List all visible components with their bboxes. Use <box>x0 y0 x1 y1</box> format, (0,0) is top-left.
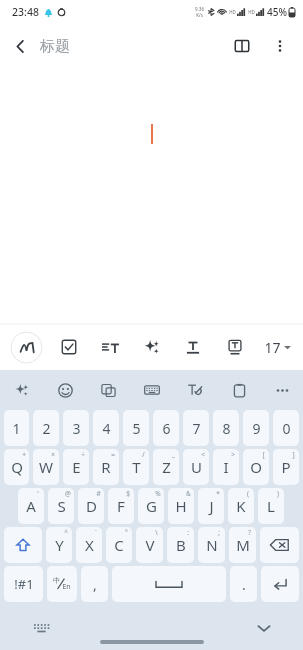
button[interactable]: 4 <box>93 410 119 446</box>
button[interactable]: AI <box>6 375 36 405</box>
button[interactable]: 8 <box>213 410 239 446</box>
button[interactable]: O <box>243 449 269 485</box>
button[interactable]: Emoji <box>50 375 80 405</box>
button[interactable]: Back <box>0 26 40 66</box>
button[interactable]: B <box>167 527 194 563</box>
staticText: S <box>57 496 66 516</box>
staticText: J <box>209 496 214 516</box>
button[interactable]: E <box>63 449 89 485</box>
button[interactable]: Hide keyboard <box>251 615 277 641</box>
button[interactable]: Z <box>153 449 179 485</box>
staticText: % <box>155 489 161 498</box>
button[interactable]: W <box>33 449 59 485</box>
button[interactable]: AI assist <box>136 332 166 362</box>
staticText: $ <box>126 489 130 498</box>
button[interactable]: 7 <box>183 410 209 446</box>
button[interactable]: S <box>48 488 74 524</box>
staticText: ` <box>95 528 97 537</box>
staticText: _ <box>172 450 175 459</box>
button[interactable]: R <box>93 449 119 485</box>
button[interactable]: 9 <box>243 410 269 446</box>
staticText: D <box>86 496 97 516</box>
button[interactable]: 3 <box>63 410 89 446</box>
button[interactable]: A <box>18 488 44 524</box>
button[interactable]: 2 <box>33 410 59 446</box>
button[interactable]: I <box>213 449 239 485</box>
button[interactable]: Text format <box>178 332 208 362</box>
button[interactable]: More <box>267 375 297 405</box>
button[interactable]: M <box>229 527 256 563</box>
button[interactable]: 17 <box>264 330 291 364</box>
staticText: R <box>101 457 111 477</box>
button[interactable]: Text box <box>220 332 250 362</box>
staticText: B <box>176 535 186 555</box>
staticText: ° <box>125 528 128 537</box>
staticText: N <box>206 535 218 555</box>
button[interactable]: 5 <box>123 410 149 446</box>
button[interactable]: C <box>106 527 132 563</box>
button[interactable]: Change language <box>47 566 77 602</box>
button[interactable]: D <box>78 488 104 524</box>
button[interactable]: 6 <box>153 410 179 446</box>
button[interactable]: N <box>198 527 225 563</box>
staticText: M <box>236 535 250 555</box>
staticText: T <box>132 457 141 477</box>
staticText: ? <box>248 528 251 537</box>
staticText: : <box>187 528 189 537</box>
staticText: K <box>236 496 246 516</box>
button[interactable]: Y <box>46 527 72 563</box>
staticText: !#1 <box>14 575 34 593</box>
staticText: # <box>96 489 101 498</box>
staticText: 4 <box>102 419 111 438</box>
staticText: X <box>85 535 94 555</box>
staticText: @ <box>65 489 71 498</box>
button[interactable]: More options <box>261 27 299 65</box>
button[interactable]: T <box>123 449 149 485</box>
staticText: H <box>175 496 187 516</box>
button[interactable]: , <box>81 566 108 602</box>
button[interactable]: Handwriting <box>180 375 210 405</box>
staticText: V <box>145 535 155 555</box>
button[interactable]: Enter <box>261 566 299 602</box>
staticText: ( <box>247 489 249 498</box>
button[interactable]: F <box>108 488 134 524</box>
staticText: 3 <box>72 419 81 438</box>
button[interactable]: Translate <box>93 375 123 405</box>
staticText: < <box>201 450 205 459</box>
staticText: U <box>191 457 202 477</box>
staticText: * <box>216 489 220 498</box>
button[interactable]: P <box>273 449 299 485</box>
button[interactable]: Checklist <box>54 332 84 362</box>
button[interactable]: Keyboard settings <box>137 375 167 405</box>
button[interactable]: V <box>136 527 163 563</box>
staticText: C <box>114 535 124 555</box>
staticText: 0 <box>282 419 291 438</box>
button[interactable]: Pen <box>10 331 43 364</box>
button[interactable]: Period <box>230 566 257 602</box>
button[interactable]: G <box>138 488 164 524</box>
button[interactable]: !#1 <box>4 566 43 602</box>
staticText: 7 <box>192 419 201 438</box>
staticText: W <box>39 457 53 477</box>
staticText: HD <box>229 9 236 15</box>
button[interactable]: 0 <box>273 410 299 446</box>
button[interactable]: Space <box>112 566 226 602</box>
button[interactable]: X <box>76 527 102 563</box>
staticText: L <box>267 496 275 516</box>
button[interactable]: Paragraph <box>95 332 125 362</box>
button[interactable]: U <box>183 449 209 485</box>
button[interactable]: 1 <box>4 410 29 446</box>
staticText: . <box>242 575 246 594</box>
button[interactable]: Clipboard <box>224 375 254 405</box>
staticText: ; <box>218 528 220 537</box>
button[interactable]: J <box>198 488 224 524</box>
button[interactable]: Reading view <box>223 27 261 65</box>
button[interactable]: H <box>168 488 194 524</box>
button[interactable]: L <box>258 488 284 524</box>
button[interactable]: K <box>228 488 254 524</box>
button[interactable]: Q <box>4 449 29 485</box>
staticText: 6 <box>162 419 171 438</box>
button[interactable]: Shift <box>4 527 42 563</box>
button[interactable]: Switch keyboard <box>28 615 54 641</box>
button[interactable]: Backspace <box>260 527 299 563</box>
